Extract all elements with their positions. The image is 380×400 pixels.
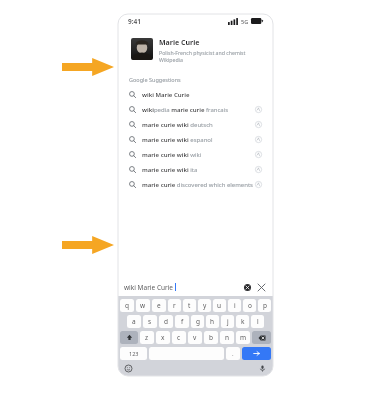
button[interactable]: wiki Marie Curie <box>129 87 262 102</box>
button[interactable]: m <box>236 331 250 344</box>
staticText: f <box>181 317 184 326</box>
button[interactable]: o <box>243 299 256 312</box>
staticText: d <box>164 317 168 326</box>
button[interactable]: v <box>188 331 202 344</box>
button[interactable]: r <box>168 299 181 312</box>
staticText: t <box>188 301 191 310</box>
button[interactable]: x <box>156 331 170 344</box>
staticText: u <box>217 301 222 310</box>
button[interactable]: Voice input <box>258 364 267 373</box>
staticText: marie curie discovered which elements <box>142 181 253 189</box>
button[interactable]: wikipedia marie curie francais <box>129 102 262 117</box>
button[interactable]: c <box>172 331 186 344</box>
button[interactable]: Key <box>120 331 138 344</box>
staticText: k <box>241 317 245 326</box>
button[interactable]: . <box>226 347 240 360</box>
staticText: Google Suggestions <box>129 76 181 83</box>
button[interactable]: marie curie wiki deutsch <box>129 117 262 132</box>
staticText: a <box>132 317 136 326</box>
staticText: s <box>148 317 152 326</box>
staticText: m <box>240 333 247 342</box>
staticText: c <box>177 333 181 342</box>
button[interactable]: u <box>213 299 226 312</box>
staticText: Marie Curie <box>159 38 200 48</box>
staticText: b <box>209 333 213 342</box>
button[interactable]: k <box>236 315 249 328</box>
button[interactable]: g <box>191 315 204 328</box>
button[interactable]: 123 <box>120 347 147 360</box>
button[interactable]: p <box>258 299 271 312</box>
staticText: q <box>125 301 129 310</box>
button[interactable]: b <box>204 331 218 344</box>
staticText: Wikipedia <box>159 56 183 63</box>
staticText: marie curie wiki deutsch <box>142 121 213 129</box>
staticText: j <box>227 317 229 326</box>
button[interactable]: Emoji <box>124 364 133 373</box>
button[interactable]: marie curie wiki wiki <box>129 147 262 162</box>
button[interactable]: Marie Curie <box>125 33 266 68</box>
staticText: v <box>193 333 197 342</box>
staticText: h <box>210 317 215 326</box>
button[interactable]: w <box>136 299 150 312</box>
staticText: 9:41 <box>128 17 141 26</box>
button[interactable]: marie curie wiki espanol <box>129 132 262 147</box>
staticText: z <box>145 333 149 342</box>
staticText: wiki Marie Curie <box>124 283 174 292</box>
button[interactable]: q <box>120 299 134 312</box>
staticText: marie curie wiki wiki <box>142 151 202 159</box>
staticText: w <box>140 301 146 310</box>
button[interactable]: l <box>251 315 264 328</box>
button[interactable]: a <box>127 315 141 328</box>
button[interactable]: y <box>198 299 211 312</box>
staticText: Polish-French physicist and chemist <box>159 49 246 56</box>
button[interactable]: Search <box>242 347 271 360</box>
staticText: r <box>173 301 176 310</box>
button[interactable]: marie curie discovered which elements <box>129 177 262 192</box>
button[interactable]: e <box>152 299 166 312</box>
staticText: i <box>234 301 236 310</box>
button[interactable]: i <box>228 299 241 312</box>
button[interactable]: j <box>221 315 234 328</box>
staticText: wiki Marie Curie <box>142 91 190 99</box>
button[interactable]: h <box>206 315 219 328</box>
button[interactable]: marie curie wiki ita <box>129 162 262 177</box>
staticText: marie curie wiki ita <box>142 166 198 174</box>
staticText: 5G <box>241 18 249 25</box>
staticText: marie curie wiki espanol <box>142 136 213 144</box>
button[interactable]: d <box>159 315 173 328</box>
staticText: g <box>196 317 200 326</box>
staticText: wikipedia marie curie francais <box>142 106 229 114</box>
button[interactable]: n <box>220 331 234 344</box>
staticText: . <box>232 350 234 358</box>
staticText: o <box>248 301 252 310</box>
staticText: x <box>161 333 165 342</box>
button[interactable]: f <box>175 315 189 328</box>
staticText: e <box>157 301 161 310</box>
staticText: p <box>263 301 267 310</box>
button[interactable]: Key <box>252 331 271 344</box>
button[interactable]: Clear <box>242 282 252 292</box>
button[interactable]: s <box>143 315 157 328</box>
button[interactable]: t <box>183 299 196 312</box>
staticText: 123 <box>129 350 139 357</box>
button[interactable]: z <box>140 331 154 344</box>
button[interactable]: Close search <box>256 282 267 293</box>
staticText: n <box>225 333 230 342</box>
staticText: l <box>257 317 259 326</box>
staticText: y <box>203 301 207 310</box>
